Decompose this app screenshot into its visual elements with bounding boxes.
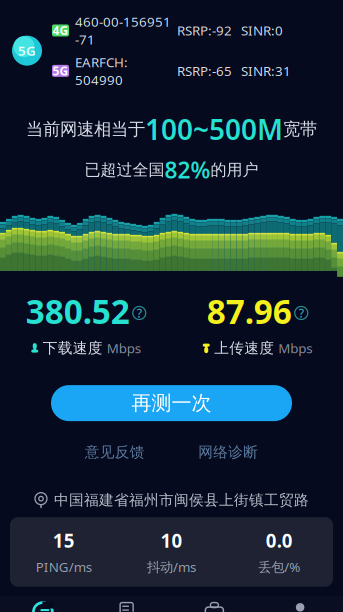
staticText: 丢包/% xyxy=(258,558,300,576)
staticText: SINR:31 xyxy=(241,62,291,80)
staticText: 抖动/ms xyxy=(147,558,196,576)
staticText: SINR:0 xyxy=(241,22,283,39)
staticText: 已超过全国 xyxy=(84,160,164,180)
staticText: 中国福建省福州市闽侯县上街镇工贸路 xyxy=(54,491,309,509)
staticText: 87.96 xyxy=(207,289,292,333)
staticText: 82% xyxy=(164,155,210,185)
button[interactable]: 我的 xyxy=(257,597,343,612)
staticText: 宽带 xyxy=(283,118,317,140)
staticText: ? xyxy=(137,305,142,321)
staticText: 5G xyxy=(52,63,68,79)
staticText: 4G xyxy=(52,22,68,38)
staticText: 380.52 xyxy=(26,289,130,333)
staticText: 当前网速相当于 xyxy=(26,118,145,140)
button[interactable]: 测速 xyxy=(0,596,86,612)
staticText: 的用户 xyxy=(210,160,258,180)
staticText: 再测一次 xyxy=(131,391,211,415)
staticText: RSRP:-65 xyxy=(177,62,232,80)
staticText: RSRP:-92 xyxy=(177,22,232,39)
staticText: 15 xyxy=(53,528,75,553)
button[interactable]: 历史 xyxy=(86,596,172,612)
staticText: 下载速度 xyxy=(43,339,103,357)
button[interactable]: 网络诊断 xyxy=(171,439,285,465)
button[interactable]: 意见反馈 xyxy=(58,439,171,465)
staticText: EARFCH:504990 xyxy=(75,53,128,89)
staticText: Mbps xyxy=(278,339,312,357)
staticText: 网络诊断 xyxy=(198,443,258,461)
staticText: Mbps xyxy=(107,339,141,357)
button[interactable]: 工具 xyxy=(171,596,257,612)
staticText: 5G xyxy=(18,42,36,59)
staticText: 意见反馈 xyxy=(85,443,145,461)
staticText: 100~500M xyxy=(145,111,283,148)
staticText: 上传速度 xyxy=(214,339,274,357)
staticText: ? xyxy=(299,305,304,321)
staticText: 0.0 xyxy=(266,528,293,553)
staticText: 460-00-156951-71 xyxy=(75,13,171,48)
staticText: PING/ms xyxy=(36,558,92,576)
staticText: 10 xyxy=(160,528,182,553)
button[interactable]: 再测一次 xyxy=(51,385,292,421)
